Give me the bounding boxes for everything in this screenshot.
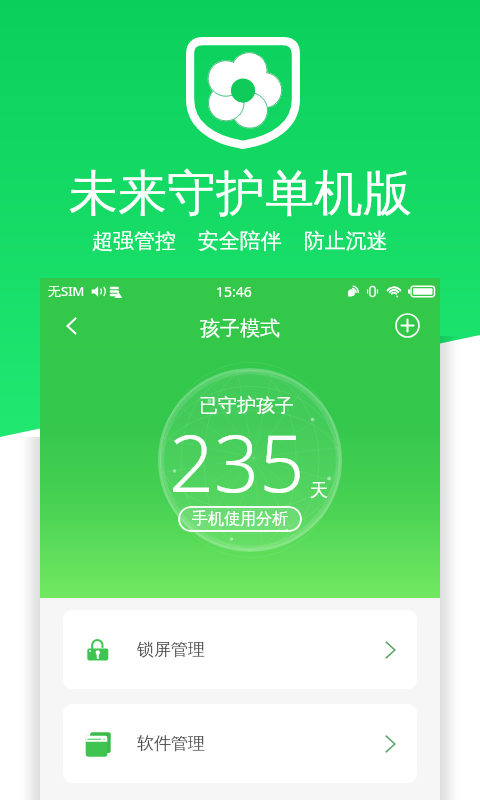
button[interactable]: 返回	[54, 309, 88, 343]
staticText: 超强管控 安全陪伴 防止沉迷	[92, 226, 388, 255]
staticText: 软件管理	[137, 733, 205, 754]
staticText: 已守护孩子	[199, 394, 294, 418]
staticText: 手机使用分析	[192, 509, 288, 529]
button[interactable]: 锁屏管理	[63, 610, 417, 689]
staticText: 无SIM	[48, 282, 85, 300]
staticText: 未来守护单机版	[69, 163, 412, 225]
staticText: 孩子模式	[200, 316, 280, 341]
staticText: 15:46	[216, 282, 252, 301]
staticText: 235	[169, 408, 305, 516]
button[interactable]: 添加	[390, 308, 424, 342]
staticText: 锁屏管理	[137, 639, 205, 660]
staticText: 天	[310, 479, 328, 502]
button[interactable]: 软件管理	[63, 704, 417, 783]
button[interactable]: 手机使用分析	[178, 506, 302, 532]
